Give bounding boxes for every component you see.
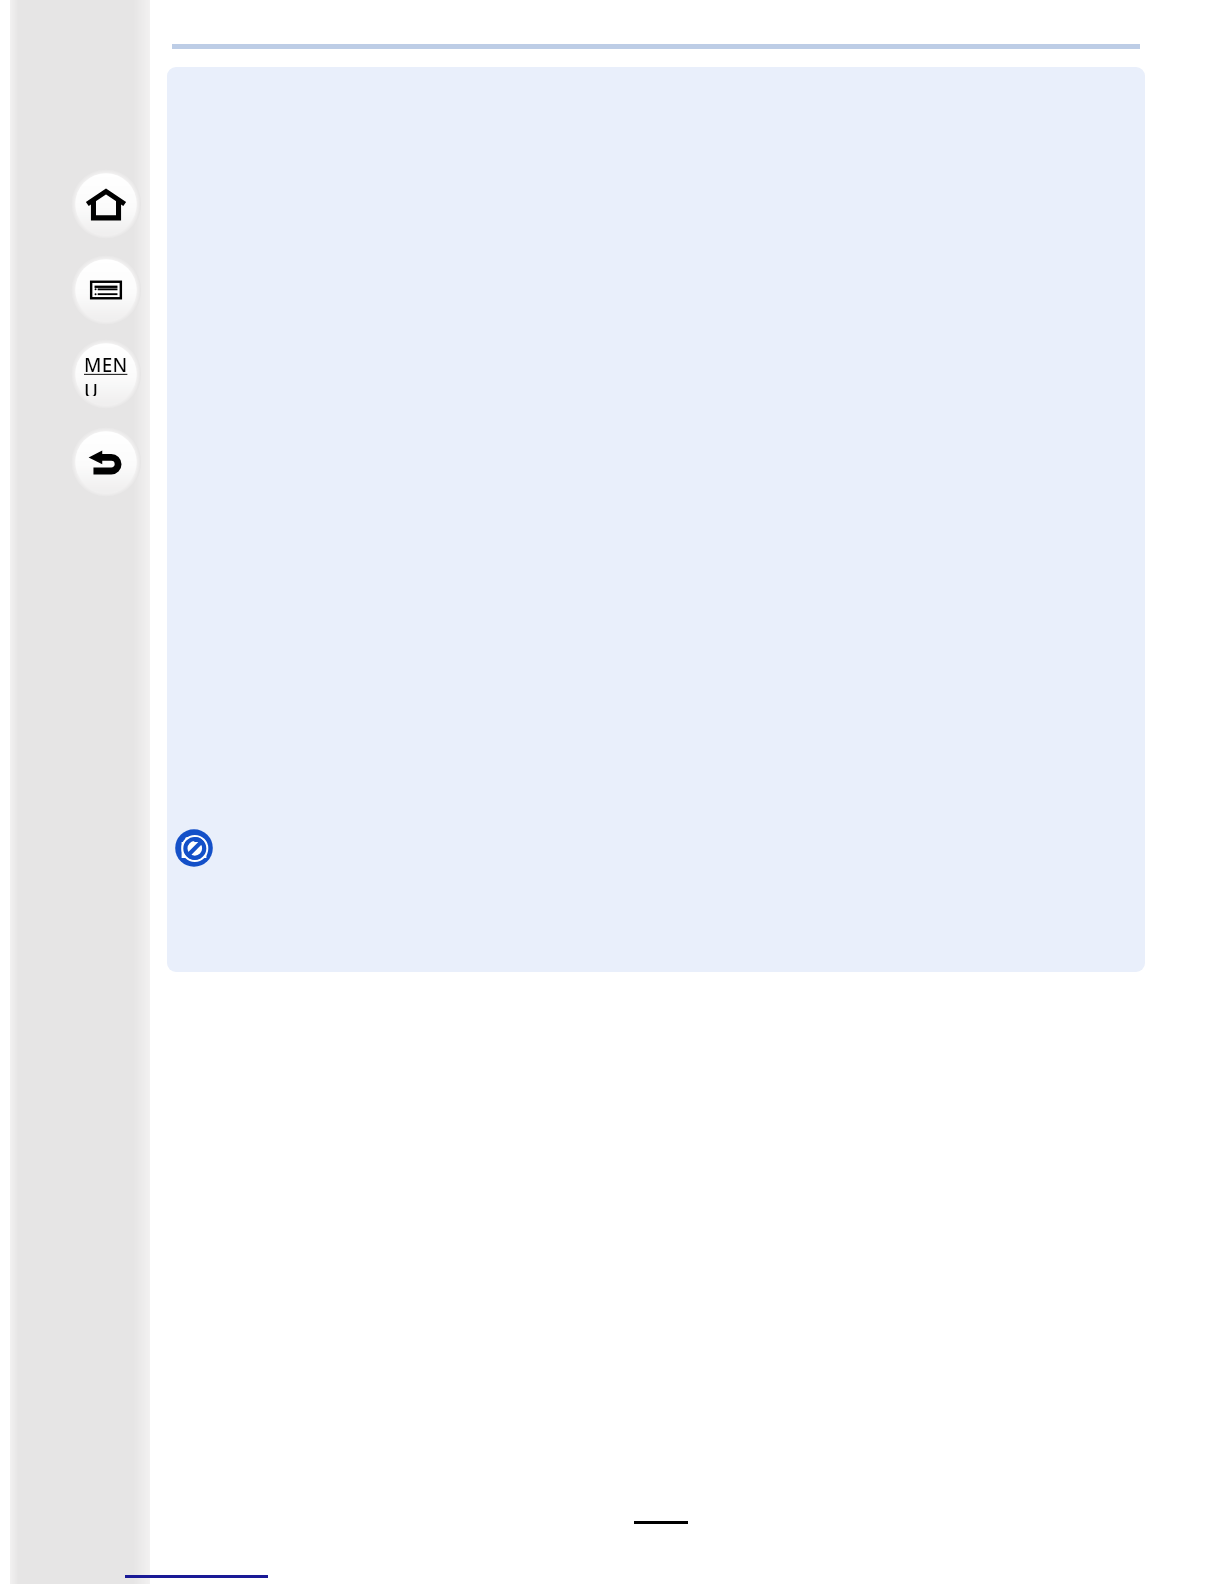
button[interactable]: Menu bbox=[71, 339, 141, 409]
button[interactable]: Contents bbox=[71, 255, 141, 325]
button[interactable]: Recording not available bbox=[174, 828, 214, 868]
staticText: MENU bbox=[84, 352, 128, 396]
button[interactable]: Back bbox=[71, 427, 141, 497]
button[interactable]: Home bbox=[71, 169, 141, 239]
